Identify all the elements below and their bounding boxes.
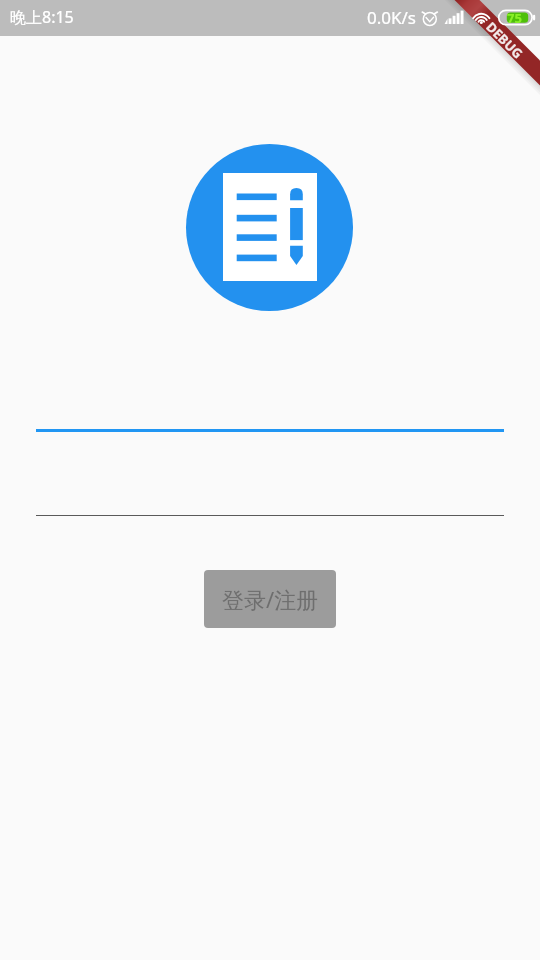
staticText: 75 (507, 9, 522, 27)
button[interactable]: 登录/注册 (204, 570, 336, 628)
other: App logo (186, 144, 353, 311)
staticText: 0.0K/s (367, 6, 416, 29)
staticText: DEBUG (484, 18, 527, 61)
button[interactable]: Password input (36, 462, 504, 516)
staticText: 登录/注册 (222, 584, 319, 614)
button[interactable]: Phone number input (36, 378, 504, 432)
staticText: 晚上8:15 (10, 6, 74, 28)
